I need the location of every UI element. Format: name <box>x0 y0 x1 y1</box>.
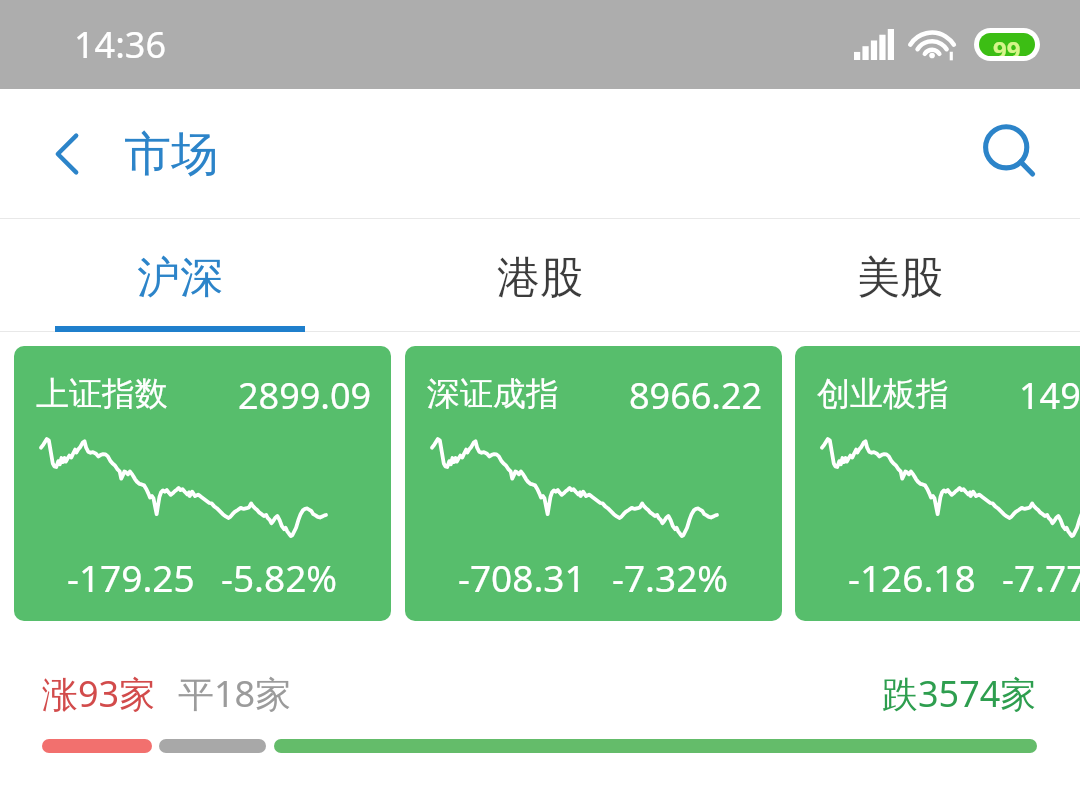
staticText: 市场 <box>124 125 218 184</box>
staticText: 1499.29 <box>1019 371 1080 420</box>
staticText: 涨93家 <box>42 669 156 718</box>
button[interactable]: 沪深 <box>0 219 360 332</box>
button[interactable]: 深证成指 <box>405 346 782 621</box>
staticText: -7.32% <box>612 552 729 602</box>
staticText: -126.18 <box>848 552 976 602</box>
staticText: 跌3574家 <box>882 669 1037 718</box>
staticText: 创业板指 <box>817 373 949 415</box>
staticText: -179.25 <box>67 552 195 602</box>
staticText: 上证指数 <box>36 373 168 415</box>
button[interactable]: 港股 <box>360 219 720 332</box>
staticText: 美股 <box>857 251 943 305</box>
staticText: 港股 <box>497 251 583 305</box>
staticText: -5.82% <box>221 552 338 602</box>
button[interactable]: Search <box>968 110 1056 198</box>
button[interactable]: 创业板指 <box>795 346 1080 621</box>
staticText: -7.77% <box>1002 552 1080 602</box>
staticText: 99 <box>993 33 1021 56</box>
staticText: 沪深 <box>137 251 223 305</box>
button[interactable]: 美股 <box>720 219 1080 332</box>
button[interactable]: 上证指数 <box>14 346 391 621</box>
staticText: -708.31 <box>458 552 586 602</box>
staticText: 深证成指 <box>427 373 559 415</box>
staticText: 14:36 <box>74 20 167 69</box>
staticText: 8966.22 <box>629 371 763 420</box>
staticText: 2899.09 <box>238 371 372 420</box>
staticText: 平18家 <box>178 669 292 718</box>
button[interactable]: Back <box>26 113 108 195</box>
